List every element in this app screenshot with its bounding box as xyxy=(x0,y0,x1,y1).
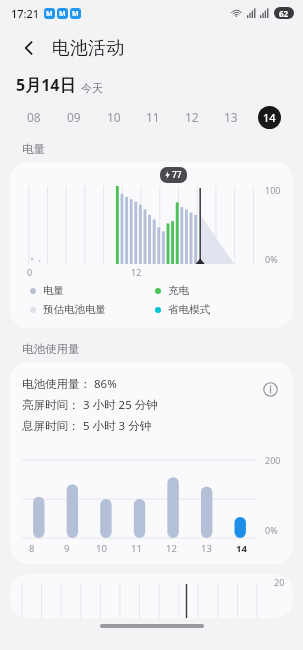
staticText: 86% xyxy=(94,376,117,392)
staticText: 3 小时 25 分钟 xyxy=(83,397,158,413)
button[interactable]: 77 xyxy=(10,162,293,328)
button[interactable]: 14 xyxy=(250,100,289,134)
staticText: 11 xyxy=(131,542,142,555)
staticText: 8 xyxy=(29,542,35,555)
staticText: 17:21 xyxy=(11,6,40,21)
staticText: 电池使用量 xyxy=(22,342,80,356)
staticText: 5 小时 3 分钟 xyxy=(83,418,152,434)
staticText: 今天 xyxy=(81,81,103,95)
staticText: M xyxy=(59,9,66,19)
staticText: M xyxy=(72,9,79,19)
staticText: 100 xyxy=(265,184,281,196)
staticText: 0% xyxy=(265,253,278,265)
staticText: 充电 xyxy=(168,284,189,297)
staticText: 9 xyxy=(64,542,70,555)
staticText: 62 xyxy=(279,8,289,19)
staticText: 10 xyxy=(107,109,121,125)
button[interactable]: 11 xyxy=(133,100,172,134)
button[interactable]: 电池使用量： xyxy=(10,362,293,564)
button[interactable]: Back xyxy=(14,33,44,63)
staticText: 电量 xyxy=(43,284,64,297)
staticText: 亮屏时间： xyxy=(22,398,80,412)
staticText: 13 xyxy=(224,109,238,125)
button[interactable]: 08 xyxy=(14,100,54,134)
button[interactable]: 09 xyxy=(54,100,94,134)
staticText: 13 xyxy=(201,542,212,555)
button[interactable]: 10 xyxy=(94,100,133,134)
staticText: 09 xyxy=(67,109,81,125)
staticText: 电量 xyxy=(22,142,45,156)
button[interactable]: 13 xyxy=(211,100,250,134)
staticText: 200 xyxy=(265,454,281,466)
staticText: 12 xyxy=(166,542,177,555)
staticText: 息屏时间： xyxy=(22,419,80,433)
staticText: M xyxy=(46,9,53,19)
staticText: 20 xyxy=(274,576,285,588)
staticText: 0% xyxy=(265,524,278,536)
staticText: 12 xyxy=(131,266,142,278)
staticText: 省电模式 xyxy=(168,303,210,316)
staticText: 电池活动 xyxy=(52,37,124,60)
staticText: 0 xyxy=(27,266,33,278)
staticText: 5月14日 xyxy=(16,74,76,96)
staticText: 12 xyxy=(185,109,199,125)
button[interactable]: 20 xyxy=(10,574,293,618)
button[interactable]: 12 xyxy=(172,100,211,134)
staticText: 预估电池电量 xyxy=(43,303,106,316)
staticText: 08 xyxy=(27,109,41,125)
staticText: 电池使用量： xyxy=(22,377,91,391)
staticText: 11 xyxy=(146,109,160,125)
staticText: 14 xyxy=(236,542,247,555)
staticText: 77 xyxy=(172,169,182,181)
staticText: 14 xyxy=(263,110,276,125)
staticText: 10 xyxy=(96,542,107,555)
button[interactable]: Info xyxy=(257,376,283,402)
